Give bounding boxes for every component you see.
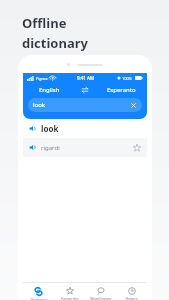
staticText: look	[41, 123, 59, 134]
staticText: rigardi	[41, 144, 60, 152]
staticText: Favourites	[61, 296, 79, 300]
button[interactable]: History	[116, 283, 147, 300]
staticText: look	[33, 101, 46, 109]
button[interactable]: Word trainer	[85, 283, 116, 300]
button[interactable]: Favourites	[54, 283, 85, 300]
staticText: History	[125, 296, 138, 300]
staticText: English	[39, 86, 60, 94]
other: Add to favourites	[133, 144, 141, 152]
staticText: Figma	[36, 76, 48, 81]
button[interactable]: Dictionary	[23, 283, 54, 300]
staticText: Dictionary	[30, 297, 48, 300]
button[interactable]: Swap languages	[75, 83, 95, 96]
button[interactable]: look	[23, 119, 147, 138]
staticText: 9:41 AM	[77, 75, 95, 81]
button[interactable]: English	[23, 83, 75, 96]
button[interactable]: look	[28, 98, 142, 112]
staticText: Esperanto	[107, 86, 136, 94]
staticText: dictionary	[22, 34, 88, 52]
button[interactable]: rigardi	[23, 138, 147, 157]
staticText: Offline	[22, 14, 67, 32]
button[interactable]: Esperanto	[95, 83, 147, 96]
staticText: 100%	[122, 76, 133, 81]
staticText: Word trainer	[90, 296, 112, 300]
